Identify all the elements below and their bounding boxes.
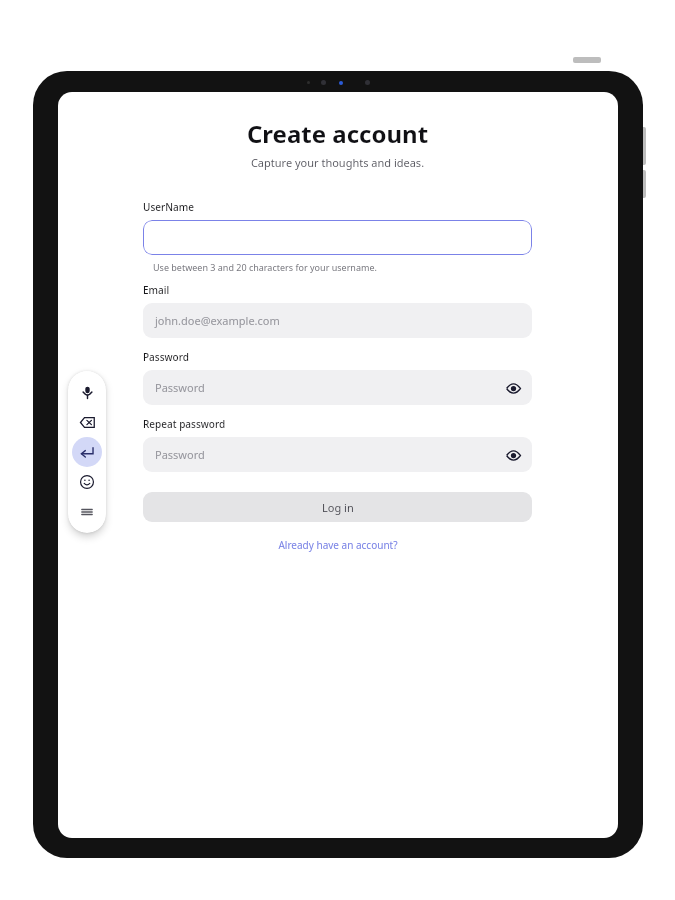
- button[interactable]: [143, 220, 532, 255]
- button[interactable]: Enter: [72, 437, 102, 467]
- button[interactable]: Already have an account?: [143, 538, 532, 552]
- button[interactable]: Voice input: [72, 377, 102, 407]
- button[interactable]: Show password: [504, 446, 522, 464]
- staticText: Create account: [143, 117, 532, 150]
- button[interactable]: Emoji: [72, 467, 102, 497]
- staticText: Already have an account?: [278, 538, 398, 552]
- button[interactable]: Menu: [72, 497, 102, 527]
- button[interactable]: john.doe@example.com: [143, 303, 532, 338]
- staticText: Capture your thoughts and ideas.: [143, 155, 532, 170]
- staticText: Email: [143, 283, 170, 297]
- staticText: Use between 3 and 20 characters for your…: [153, 261, 377, 273]
- staticText: Password: [143, 350, 189, 364]
- button[interactable]: Password: [143, 370, 532, 405]
- button[interactable]: Backspace: [72, 407, 102, 437]
- button[interactable]: Password: [143, 437, 532, 472]
- button[interactable]: Log in: [143, 492, 532, 522]
- staticText: john.doe@example.com: [155, 313, 280, 328]
- button[interactable]: Show password: [504, 379, 522, 397]
- staticText: Repeat password: [143, 417, 226, 431]
- staticText: UserName: [143, 200, 194, 214]
- staticText: Password: [155, 447, 205, 462]
- staticText: Log in: [322, 500, 354, 515]
- staticText: Password: [155, 380, 205, 395]
